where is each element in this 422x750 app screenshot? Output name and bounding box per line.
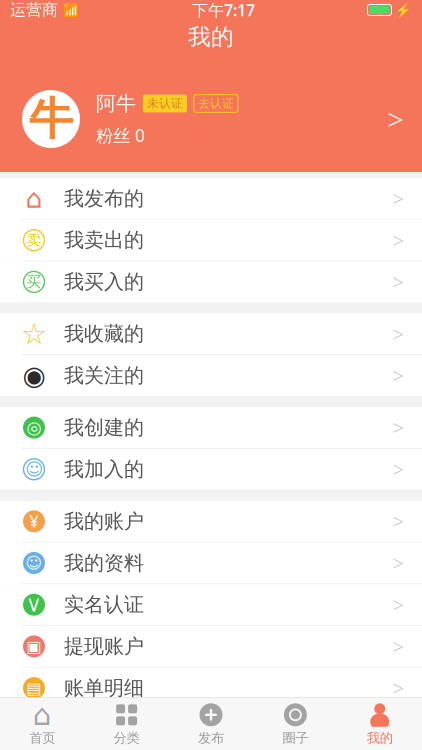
staticText: ⌂	[25, 183, 42, 214]
staticText: 实名认证	[64, 592, 144, 617]
staticText: 我的	[367, 730, 393, 746]
button[interactable]: ⌂	[0, 697, 84, 750]
staticText: 账单明细	[64, 676, 144, 700]
staticText: 去认证	[198, 96, 234, 111]
staticText: 我的	[188, 23, 234, 51]
staticText: >	[392, 675, 403, 701]
staticText: 未认证	[147, 96, 183, 111]
staticText: 我收藏的	[64, 322, 144, 346]
staticText: >	[392, 414, 403, 441]
staticText: ◉	[22, 360, 45, 391]
staticText: 我的资料	[64, 551, 144, 575]
button[interactable]: 买	[0, 261, 422, 302]
staticText: 提现账户	[64, 634, 144, 659]
staticText: ⚡	[395, 2, 412, 18]
button[interactable]: V	[0, 584, 422, 626]
staticText: >	[392, 269, 403, 295]
staticText: ⌂	[33, 698, 52, 731]
button[interactable]: ☺	[0, 449, 422, 490]
staticText: ▤	[26, 679, 41, 697]
button[interactable]: ◉	[0, 355, 422, 396]
staticText: ☆	[21, 317, 47, 351]
staticText: 📶	[63, 2, 80, 18]
staticText: >	[392, 550, 403, 576]
staticText: 我创建的	[64, 415, 144, 440]
staticText: ☺	[25, 459, 43, 479]
staticText: >	[392, 321, 403, 347]
button[interactable]: 圈子	[253, 697, 338, 750]
staticText: 粉丝 0	[96, 124, 145, 147]
staticText: ¥	[29, 511, 38, 532]
staticText: >	[392, 227, 403, 253]
staticText: 我卖出的	[64, 228, 144, 252]
button[interactable]: ¥	[0, 501, 422, 542]
staticText: 分类	[114, 730, 140, 746]
staticText: ▣	[26, 637, 41, 655]
staticText: >	[392, 185, 403, 212]
staticText: ☺	[25, 554, 42, 572]
staticText: 我加入的	[64, 457, 144, 482]
staticText: >	[392, 362, 403, 389]
button[interactable]: 分类	[84, 697, 169, 750]
staticText: 我买入的	[64, 270, 144, 294]
staticText: 阿牛	[96, 91, 136, 116]
staticText: 下午7:17	[192, 0, 255, 21]
staticText: 发布	[198, 730, 224, 746]
button[interactable]: ☆	[0, 313, 422, 355]
staticText: 牛	[29, 92, 73, 146]
staticText: 买	[26, 273, 41, 291]
button[interactable]: 发布	[169, 697, 253, 750]
staticText: 圈子	[282, 730, 308, 746]
staticText: V	[28, 593, 39, 616]
button[interactable]: 我的	[338, 697, 422, 750]
button[interactable]: ▣	[0, 626, 422, 668]
staticText: >	[392, 591, 403, 618]
button[interactable]: ▤	[0, 668, 422, 709]
staticText: 我的账户	[64, 509, 144, 534]
staticText: 首页	[29, 730, 55, 746]
staticText: 卖	[26, 231, 41, 249]
button[interactable]: 卖	[0, 220, 422, 261]
staticText: 运营商	[10, 0, 58, 20]
button[interactable]: 牛	[0, 90, 422, 148]
staticText: >	[387, 99, 404, 138]
staticText: 我关注的	[64, 363, 144, 388]
button[interactable]: ◎	[0, 407, 422, 449]
staticText: >	[392, 508, 403, 535]
staticText: ◎	[26, 418, 41, 437]
button[interactable]: ⌂	[0, 178, 422, 220]
staticText: >	[392, 633, 403, 660]
button[interactable]: ☺	[0, 542, 422, 584]
staticText: 我发布的	[64, 186, 144, 211]
staticText: >	[392, 456, 403, 483]
